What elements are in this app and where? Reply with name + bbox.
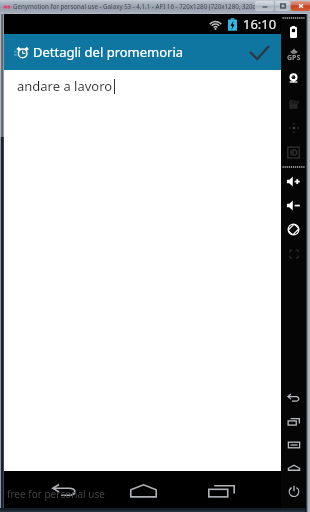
button[interactable]: Fullscreen — [281, 243, 306, 265]
button[interactable]: Back — [47, 471, 83, 508]
button[interactable]: GPS — [281, 43, 306, 65]
button[interactable]: Done — [238, 34, 281, 70]
button[interactable]: Menu — [281, 434, 306, 456]
button[interactable]: Identifiers — [281, 141, 306, 163]
staticText: GPS — [287, 53, 301, 63]
button[interactable]: Back — [281, 387, 306, 409]
button[interactable]: Power — [281, 480, 306, 502]
button[interactable]: andare a lavoro — [4, 72, 281, 100]
button[interactable]: Home — [281, 457, 306, 479]
staticText: andare a lavoro — [17, 77, 113, 95]
button[interactable]: Minimize — [255, 1, 274, 11]
staticText: free for personal use — [7, 487, 105, 501]
staticText: Dettagli del promemoria — [33, 43, 184, 61]
button[interactable]: Recent apps — [203, 471, 239, 508]
staticText: 16:10 — [243, 15, 277, 33]
button[interactable]: Volume down — [281, 194, 306, 216]
button[interactable]: Home — [125, 471, 161, 508]
button[interactable]: Battery — [281, 21, 306, 43]
button[interactable]: Video recording — [281, 93, 306, 115]
staticText: Genymotion for personal use - Galaxy S3 … — [13, 2, 264, 10]
button[interactable]: Move — [281, 117, 306, 139]
button[interactable]: Camera — [281, 67, 306, 89]
button[interactable]: Volume up — [281, 170, 306, 192]
button[interactable]: Rotate — [281, 218, 306, 240]
button[interactable]: Maximize — [275, 1, 290, 11]
button[interactable]: Close — [291, 1, 310, 11]
button[interactable]: Recent apps — [281, 411, 306, 433]
